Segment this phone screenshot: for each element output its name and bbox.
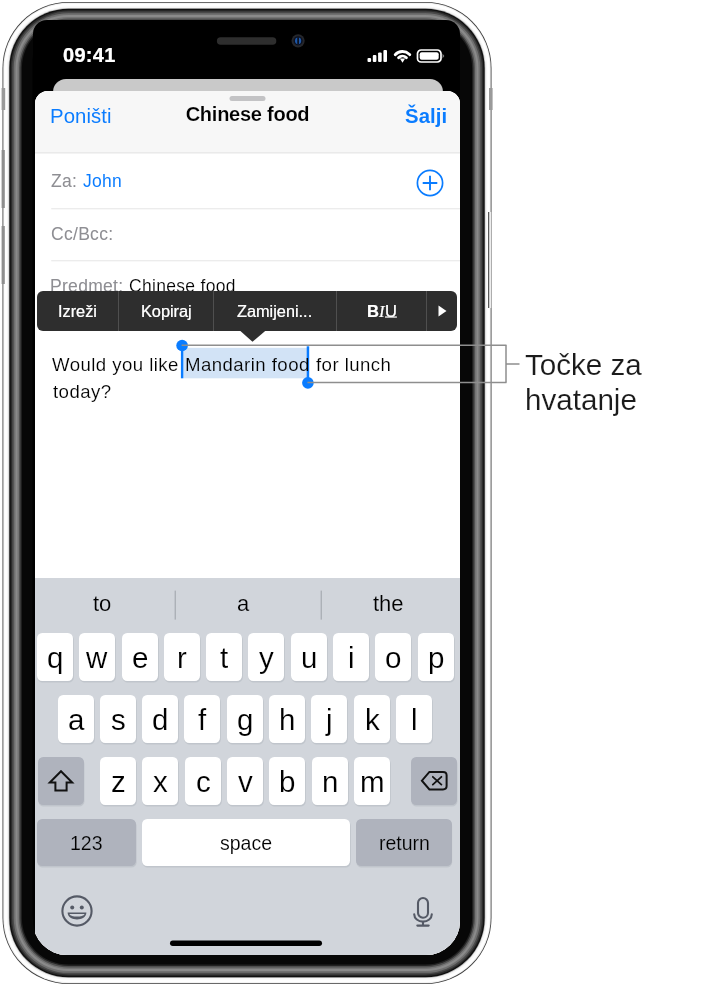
staticText: i [348, 641, 355, 674]
button[interactable]: u [291, 633, 327, 681]
staticText: Predmet: [50, 276, 129, 296]
staticText: Točke za hvatanje [525, 348, 642, 416]
button[interactable]: q [37, 633, 73, 681]
button[interactable]: the [348, 589, 428, 617]
staticText: o [385, 641, 402, 674]
button[interactable]: Dictation [407, 896, 439, 928]
button[interactable]: return [356, 819, 452, 866]
staticText: w [86, 641, 108, 674]
staticText: c [196, 765, 211, 798]
button[interactable]: Izreži [37, 291, 118, 331]
staticText: j [326, 703, 333, 736]
button[interactable]: y [248, 633, 284, 681]
staticText: l [411, 703, 418, 736]
button[interactable]: g [227, 695, 263, 743]
staticText: x [153, 765, 168, 798]
button[interactable]: w [79, 633, 115, 681]
staticText: z [111, 765, 126, 798]
staticText: Za: [51, 171, 83, 191]
staticText: B [367, 302, 379, 320]
button[interactable]: i [333, 633, 369, 681]
button[interactable]: d [142, 695, 178, 743]
button[interactable]: t [206, 633, 242, 681]
button[interactable]: Add recipient [416, 169, 444, 197]
button[interactable]: Zamijeni... [214, 291, 336, 331]
staticText: Chinese food [35, 103, 460, 125]
staticText: h [279, 703, 296, 736]
button[interactable]: v [227, 757, 263, 805]
staticText: a [237, 591, 250, 616]
staticText: f [198, 703, 207, 736]
staticText: to [93, 591, 112, 616]
button[interactable]: z [100, 757, 136, 805]
button[interactable]: s [100, 695, 136, 743]
staticText: n [322, 765, 339, 798]
button[interactable]: e [122, 633, 158, 681]
staticText: for lunch [316, 354, 392, 375]
button[interactable]: r [164, 633, 200, 681]
staticText: Poništi [50, 105, 112, 128]
staticText: v [238, 765, 253, 798]
button[interactable]: 123 [37, 819, 136, 866]
button[interactable]: More [427, 291, 457, 331]
button[interactable]: k [354, 695, 390, 743]
staticText: I [379, 302, 385, 320]
button[interactable]: Poništi [48, 103, 114, 130]
button[interactable]: c [185, 757, 221, 805]
staticText: Mandarin food [185, 354, 310, 375]
button[interactable]: x [142, 757, 178, 805]
button[interactable]: Kopiraj [119, 291, 213, 331]
button[interactable]: j [311, 695, 347, 743]
staticText: Zamijeni... [237, 302, 313, 320]
staticText: John [83, 171, 123, 191]
staticText: the [373, 591, 404, 616]
button[interactable]: Backspace [411, 757, 457, 805]
staticText: d [152, 703, 169, 736]
button[interactable]: f [184, 695, 220, 743]
button[interactable]: Emoji [61, 895, 93, 927]
staticText: g [237, 703, 254, 736]
button[interactable]: Shift [38, 757, 84, 805]
staticText: today? [53, 381, 112, 402]
staticText: e [132, 641, 149, 674]
staticText: m [360, 765, 385, 798]
button[interactable]: n [312, 757, 348, 805]
staticText: 09:41 [63, 44, 116, 66]
button[interactable]: b [269, 757, 305, 805]
staticText: q [47, 641, 64, 674]
button[interactable]: a [58, 695, 94, 743]
staticText: r [177, 641, 187, 674]
button[interactable]: p [418, 633, 454, 681]
staticText: u [301, 641, 318, 674]
button[interactable]: B [337, 291, 426, 331]
staticText: b [279, 765, 296, 798]
staticText: s [111, 703, 126, 736]
button[interactable]: space [142, 819, 350, 866]
staticText: space [220, 832, 273, 854]
button[interactable]: h [269, 695, 305, 743]
staticText: Chinese food [129, 276, 236, 296]
staticText: U [385, 302, 397, 320]
staticText: 123 [70, 832, 103, 854]
button[interactable]: Šalji [403, 103, 450, 130]
staticText: Would you like [52, 354, 179, 375]
button[interactable]: o [375, 633, 411, 681]
staticText: Cc/Bcc: [51, 224, 114, 244]
staticText: p [428, 641, 445, 674]
staticText: a [68, 703, 85, 736]
staticText: y [259, 641, 274, 674]
staticText: k [365, 703, 380, 736]
staticText: return [379, 832, 430, 854]
button[interactable]: a [203, 589, 283, 617]
staticText: Izreži [58, 302, 97, 320]
staticText: Kopiraj [141, 302, 192, 320]
staticText: t [220, 641, 229, 674]
staticText: Šalji [405, 105, 448, 128]
button[interactable]: l [396, 695, 432, 743]
button[interactable]: to [62, 589, 142, 617]
button[interactable]: m [354, 757, 390, 805]
